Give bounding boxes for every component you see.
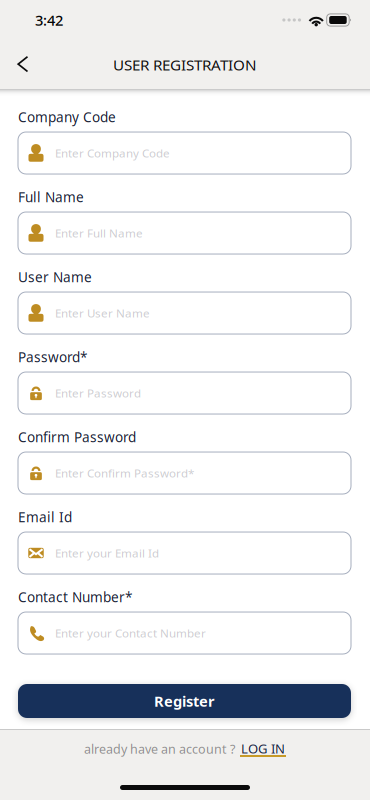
staticText: Enter User Name: [55, 305, 150, 321]
button[interactable]: Enter your Email Id: [18, 532, 351, 574]
staticText: LOG IN: [241, 740, 285, 757]
staticText: Enter Password: [55, 385, 141, 401]
staticText: Full Name: [18, 188, 84, 206]
staticText: already have an account ?: [84, 740, 235, 758]
staticText: Password*: [18, 348, 87, 366]
button[interactable]: Enter Confirm Password*: [18, 452, 351, 494]
button[interactable]: Register: [18, 684, 351, 718]
staticText: Enter Full Name: [55, 225, 143, 241]
staticText: Register: [154, 691, 215, 711]
button[interactable]: Enter Password: [18, 372, 351, 414]
staticText: Company Code: [18, 108, 116, 126]
staticText: Enter Confirm Password*: [55, 465, 194, 481]
staticText: Email Id: [18, 508, 72, 526]
staticText: 3:42: [35, 10, 63, 30]
button[interactable]: Enter Company Code: [18, 132, 351, 174]
button[interactable]: Back: [6, 46, 40, 82]
staticText: User Name: [18, 268, 92, 286]
staticText: Enter Company Code: [55, 145, 170, 161]
staticText: Confirm Password: [18, 428, 136, 446]
button[interactable]: Enter your Contact Number: [18, 612, 351, 654]
staticText: USER REGISTRATION: [113, 54, 257, 75]
staticText: Contact Number*: [18, 588, 132, 606]
staticText: Enter your Contact Number: [55, 625, 206, 641]
button[interactable]: Enter Full Name: [18, 212, 351, 254]
button[interactable]: LOG IN: [240, 742, 286, 757]
staticText: Enter your Email Id: [55, 545, 159, 561]
button[interactable]: Enter User Name: [18, 292, 351, 334]
